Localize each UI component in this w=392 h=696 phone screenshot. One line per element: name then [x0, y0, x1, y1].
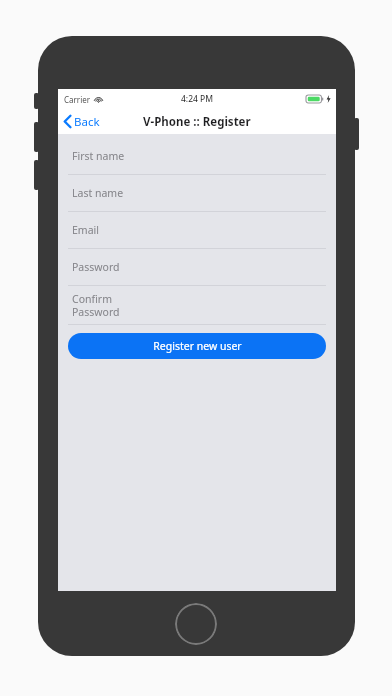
staticText: V-Phone :: Register — [143, 114, 251, 130]
staticText: 4:24 PM — [181, 93, 214, 105]
button[interactable]: Register new user — [68, 333, 326, 359]
button[interactable]: Email — [58, 212, 336, 248]
button[interactable]: Back — [58, 109, 110, 134]
staticText: Password — [72, 260, 120, 274]
button[interactable]: Confirm Password — [58, 286, 336, 324]
staticText: Email — [72, 223, 99, 237]
button[interactable]: First name — [58, 138, 336, 174]
button[interactable]: Last name — [58, 175, 336, 211]
staticText: Last name — [72, 186, 124, 200]
staticText: Register new user — [153, 339, 242, 353]
button[interactable]: Password — [58, 249, 336, 285]
staticText: First name — [72, 149, 125, 163]
staticText: Carrier — [64, 94, 91, 105]
staticText: Back — [74, 114, 100, 130]
other: Home — [175, 603, 217, 645]
staticText: Confirm Password — [72, 292, 120, 319]
